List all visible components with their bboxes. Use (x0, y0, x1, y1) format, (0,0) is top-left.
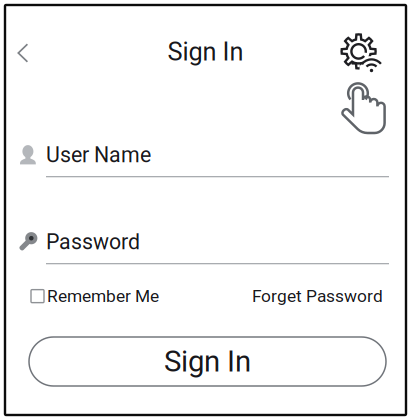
button[interactable]: Sign In (29, 337, 386, 386)
button[interactable]: Settings (340, 33, 392, 83)
staticText: Remember Me (47, 286, 159, 306)
staticText: Forget Password (252, 286, 383, 306)
button[interactable]: Back (3, 33, 43, 73)
button[interactable]: Remember Me (31, 286, 159, 306)
button[interactable]: Forget Password (252, 286, 383, 306)
staticText: Password (46, 229, 140, 254)
staticText: User Name (46, 142, 151, 167)
staticText: Sign In (167, 37, 243, 67)
staticText: Sign In (164, 344, 251, 379)
